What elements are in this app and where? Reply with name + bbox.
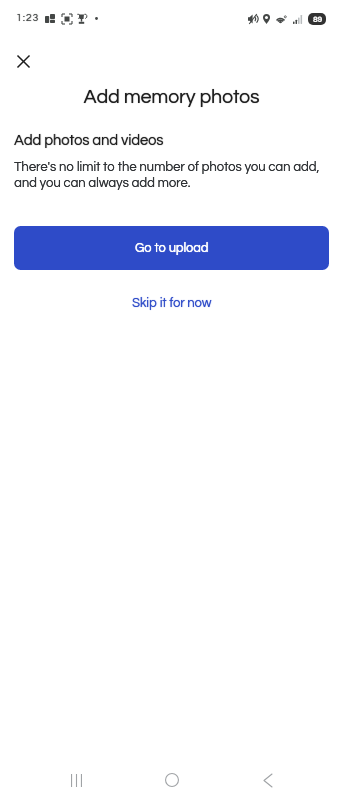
staticText: 1:23	[16, 13, 40, 24]
button[interactable]: Close	[3, 41, 43, 81]
button[interactable]: Go to upload	[14, 226, 329, 270]
staticText: There's no limit to the number of photos…	[14, 160, 324, 190]
button[interactable]: Back	[244, 760, 292, 800]
staticText: Add photos and videos	[14, 133, 164, 148]
staticText: Go to upload	[135, 242, 209, 255]
button[interactable]: Home	[148, 760, 196, 800]
button[interactable]: Recent apps	[52, 760, 100, 800]
staticText: 89	[313, 15, 322, 23]
staticText: Add memory photos	[0, 87, 343, 107]
button[interactable]: Skip it for now	[14, 284, 329, 322]
staticText: Skip it for now	[132, 297, 212, 310]
